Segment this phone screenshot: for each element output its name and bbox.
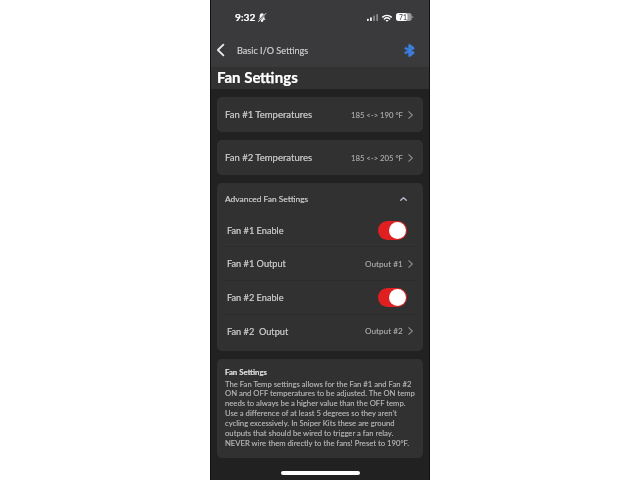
- staticText: Output #2: [365, 326, 403, 336]
- staticText: Output #1: [365, 259, 403, 269]
- button[interactable]: Fan #2 Enable: [217, 281, 423, 314]
- staticText: Fan #1 Temperatures: [225, 109, 313, 120]
- button[interactable]: Fan #2 Output: [217, 315, 423, 347]
- button[interactable]: Fan #1 Enable: [217, 214, 423, 246]
- button[interactable]: Fan #1 Output: [217, 247, 423, 280]
- staticText: Fan #1 Output: [227, 258, 286, 269]
- staticText: 185 <-> 190 °F: [351, 110, 403, 119]
- staticText: Basic I/O Settings: [237, 45, 309, 56]
- staticText: 185 <-> 205 °F: [351, 153, 403, 162]
- button[interactable]: Advanced Fan Settings: [217, 183, 423, 214]
- staticText: Fan #2 Temperatures: [225, 152, 313, 163]
- button[interactable]: Fan #2 Temperatures: [217, 140, 423, 175]
- staticText: 9:32: [235, 11, 256, 23]
- button[interactable]: Bluetooth: [399, 40, 419, 60]
- button[interactable]: Fan #1 Temperatures: [217, 97, 423, 132]
- staticText: Advanced Fan Settings: [225, 194, 309, 204]
- button[interactable]: Back: [209, 39, 231, 61]
- staticText: The Fan Temp settings allows for the Fan…: [225, 379, 415, 448]
- staticText: Fan Settings: [225, 367, 267, 376]
- staticText: Fan #2 Output: [227, 326, 289, 337]
- staticText: Fan #1 Enable: [227, 225, 284, 236]
- staticText: 71: [399, 13, 407, 21]
- staticText: Fan #2 Enable: [227, 292, 284, 303]
- staticText: Fan Settings: [217, 68, 298, 86]
